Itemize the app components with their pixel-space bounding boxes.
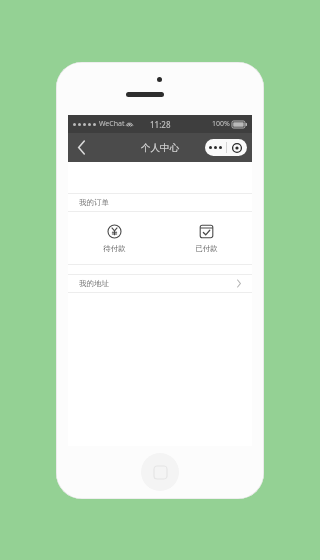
button[interactable]: Menu — [205, 139, 247, 156]
staticText: 11:28 — [150, 119, 171, 130]
staticText: 个人中心 — [141, 142, 179, 154]
button[interactable]: 待付款 — [68, 212, 160, 264]
staticText: 我的订单 — [79, 198, 109, 207]
staticText: 我的地址 — [79, 279, 109, 288]
button[interactable]: 已付款 — [160, 212, 252, 264]
staticText: 100% — [212, 119, 230, 129]
staticText: 已付款 — [195, 244, 218, 253]
staticText: 待付款 — [103, 244, 126, 253]
button[interactable]: Back — [68, 133, 94, 162]
button[interactable]: 我的地址 — [68, 275, 252, 292]
staticText: WeChat — [99, 119, 125, 129]
